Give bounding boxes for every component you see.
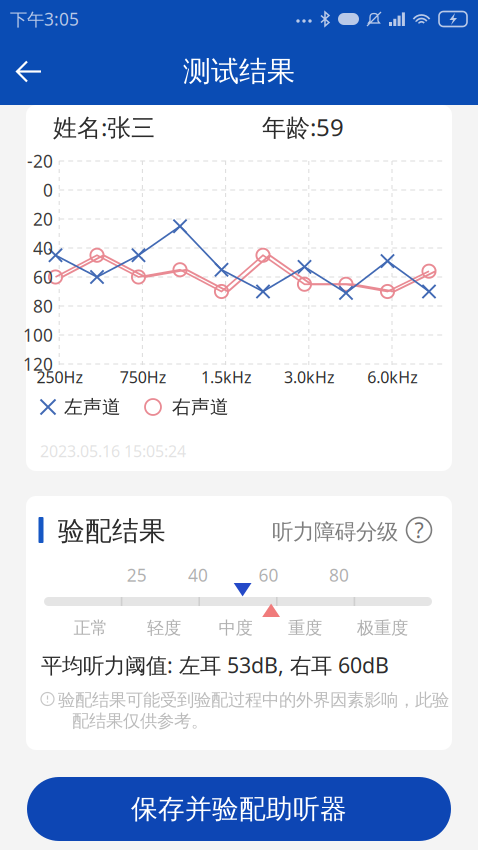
staticText: 保存并验配助听器 xyxy=(131,793,347,825)
staticText: 60 xyxy=(33,265,53,288)
staticText: 验配结果 xyxy=(58,515,166,547)
staticText: 极重度 xyxy=(357,617,408,639)
staticText: 40 xyxy=(33,236,53,259)
staticText: 正常 xyxy=(73,617,107,639)
staticText: 1.5kHz xyxy=(201,366,252,388)
staticText: 250Hz xyxy=(36,366,83,388)
staticText: 下午3:05 xyxy=(10,7,79,30)
staticText: 80 xyxy=(33,294,53,317)
button[interactable]: 保存并验配助听器 xyxy=(27,777,451,841)
staticText: 左声道 xyxy=(64,395,121,418)
staticText: 80 xyxy=(329,563,349,586)
staticText: 年龄:59 xyxy=(262,111,344,143)
staticText: -20 xyxy=(27,149,53,172)
staticText: 轻度 xyxy=(147,617,181,639)
staticText: 20 xyxy=(33,207,53,230)
staticText: 右声道 xyxy=(172,395,229,418)
staticText: 40 xyxy=(188,563,208,586)
staticText: ? xyxy=(414,516,423,544)
staticText: 中度 xyxy=(218,617,252,639)
staticText: 听力障碍分级 xyxy=(272,519,398,545)
staticText: 测试结果 xyxy=(183,54,295,89)
button[interactable]: 听力障碍分级说明 xyxy=(405,516,433,544)
staticText: 25 xyxy=(127,563,147,586)
staticText: 重度 xyxy=(288,617,322,639)
button[interactable]: 返回 xyxy=(0,42,58,100)
staticText: 0 xyxy=(43,178,53,201)
staticText: 验配结果可能受到验配过程中的外界因素影响，此验 xyxy=(58,689,449,711)
staticText: 姓名:张三 xyxy=(53,111,155,143)
staticText: 100 xyxy=(23,323,53,346)
staticText: 6.0kHz xyxy=(367,366,418,388)
staticText: 120 xyxy=(23,352,53,375)
staticText: 2023.05.16 15:05:24 xyxy=(40,440,186,462)
staticText: 配结果仅供参考。 xyxy=(72,710,208,732)
staticText: 3.0kHz xyxy=(284,366,335,388)
staticText: 60 xyxy=(258,563,278,586)
staticText: 750Hz xyxy=(120,366,167,388)
staticText: 平均听力阈值: 左耳 53dB, 右耳 60dB xyxy=(41,651,389,679)
